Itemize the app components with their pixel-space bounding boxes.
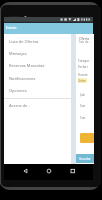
button[interactable]: Recent apps	[67, 164, 81, 180]
staticText: Notificaciones	[9, 76, 36, 81]
button[interactable]: Home	[42, 164, 56, 180]
staticText: Mensajes	[9, 51, 27, 56]
staticText: Acerca de ..	[9, 103, 31, 108]
staticText: Reservas Mascotas	[9, 63, 45, 68]
staticText: Ordenar	[78, 79, 87, 83]
button[interactable]: Notificaciones	[4, 72, 71, 84]
staticText: Sue	[80, 104, 86, 108]
staticText: Lista de Ofertas	[9, 39, 39, 44]
staticText: Oferta	[79, 36, 90, 41]
button[interactable]: Reservas Mascotas	[4, 59, 71, 71]
button[interactable]: Ordenar	[78, 78, 87, 83]
staticText: Fuente	[78, 73, 88, 77]
button[interactable]: Guardar	[76, 154, 94, 163]
button[interactable]	[80, 133, 94, 143]
button[interactable]: Back	[16, 164, 30, 180]
button[interactable]: Opciones	[4, 84, 71, 96]
staticText: Jub	[80, 93, 85, 97]
staticText: Sau de ..	[79, 40, 91, 44]
button[interactable]: Acerca de ..	[4, 100, 71, 111]
staticText: Opciones	[9, 88, 27, 93]
staticText: Inicio	[6, 25, 17, 30]
staticText: Guardar	[79, 157, 91, 161]
staticText: Categor	[78, 59, 90, 63]
button[interactable]: Mensajes	[4, 47, 71, 59]
staticText: Can	[80, 116, 86, 120]
button[interactable]: Lista de Ofertas	[4, 35, 71, 47]
staticText: Fecha i	[78, 65, 88, 69]
